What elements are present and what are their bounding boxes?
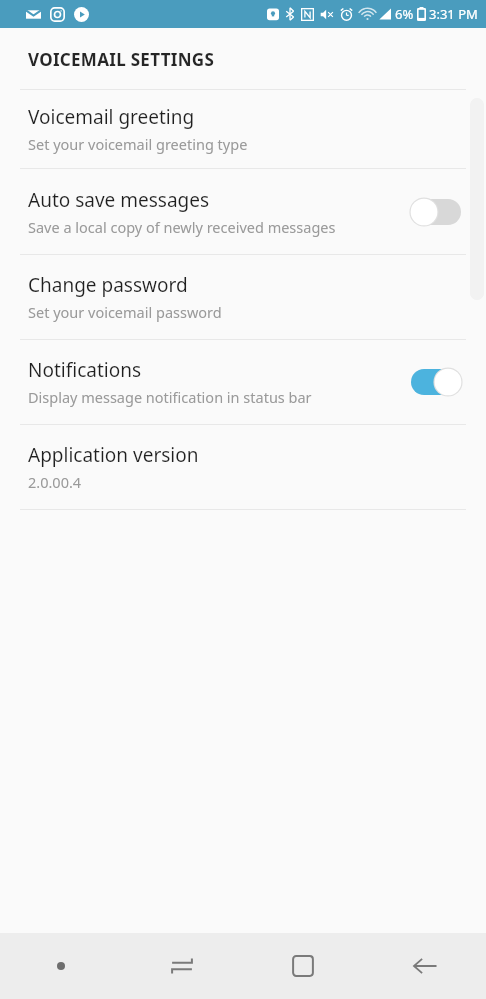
button[interactable]: Toggle on: [408, 365, 464, 399]
staticText: Application version: [28, 442, 199, 468]
button[interactable]: Application version: [0, 425, 486, 509]
button[interactable]: Toggle off: [408, 195, 464, 229]
button[interactable]: Change password: [0, 255, 486, 339]
button[interactable]: Menu indicator: [0, 933, 121, 999]
button[interactable]: Auto save messages: [0, 169, 486, 254]
staticText: Set your voicemail password: [28, 302, 222, 322]
staticText: Save a local copy of newly received mess…: [28, 217, 336, 237]
button[interactable]: Recent apps: [121, 933, 242, 999]
button[interactable]: Back: [364, 933, 486, 999]
staticText: Voicemail greeting: [28, 104, 195, 130]
button[interactable]: Notifications: [0, 340, 486, 424]
staticText: Display message notification in status b…: [28, 387, 312, 407]
button[interactable]: Home: [242, 933, 364, 999]
staticText: Set your voicemail greeting type: [28, 134, 248, 154]
staticText: Change password: [28, 272, 188, 298]
staticText: 3:31 PM: [429, 5, 478, 23]
staticText: Auto save messages: [28, 187, 210, 213]
staticText: VOICEMAIL SETTINGS: [28, 48, 215, 71]
staticText: 2.0.00.4: [28, 472, 82, 492]
button[interactable]: Voicemail greeting: [0, 90, 486, 168]
staticText: Notifications: [28, 357, 142, 383]
staticText: 6%: [395, 5, 414, 23]
